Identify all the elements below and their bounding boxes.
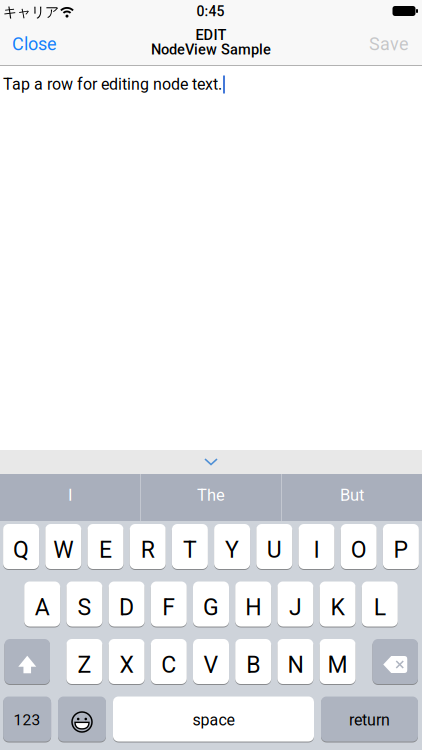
button[interactable]: Close bbox=[0, 25, 69, 63]
staticText: Tap a row for editing node text. bbox=[3, 75, 222, 94]
staticText: S bbox=[77, 594, 91, 621]
button[interactable]: But bbox=[282, 474, 422, 521]
button[interactable]: N bbox=[277, 638, 313, 684]
staticText: I bbox=[68, 485, 72, 505]
button[interactable]: X bbox=[109, 638, 145, 684]
staticText: EDIT bbox=[195, 26, 226, 43]
button[interactable]: Q bbox=[3, 523, 39, 569]
staticText: Close bbox=[12, 33, 57, 55]
staticText: V bbox=[203, 651, 218, 678]
button[interactable]: Shift bbox=[4, 638, 50, 684]
staticText: L bbox=[374, 594, 386, 621]
staticText: But bbox=[340, 485, 364, 505]
staticText: The bbox=[197, 485, 225, 505]
staticText: Save bbox=[369, 33, 409, 55]
staticText: return bbox=[349, 711, 390, 729]
staticText: 123 bbox=[14, 711, 41, 729]
button[interactable]: T bbox=[172, 523, 208, 569]
staticText: P bbox=[393, 536, 408, 563]
button[interactable]: I bbox=[0, 474, 140, 521]
staticText: R bbox=[141, 536, 155, 563]
staticText: キャリア bbox=[3, 3, 59, 21]
button[interactable]: L bbox=[362, 581, 398, 627]
button[interactable]: space bbox=[113, 696, 314, 742]
button[interactable]: D bbox=[109, 581, 145, 627]
staticText: Z bbox=[77, 651, 91, 678]
button[interactable]: B bbox=[235, 638, 271, 684]
button[interactable]: return bbox=[321, 696, 418, 742]
button[interactable]: J bbox=[277, 581, 313, 627]
button[interactable]: F bbox=[151, 581, 187, 627]
staticText: C bbox=[161, 651, 176, 678]
button[interactable]: K bbox=[320, 581, 356, 627]
staticText: H bbox=[245, 594, 261, 621]
staticText: X bbox=[120, 651, 134, 678]
button[interactable]: 123 bbox=[3, 696, 51, 742]
button[interactable]: The bbox=[141, 474, 281, 521]
staticText: O bbox=[351, 536, 367, 563]
button[interactable]: Z bbox=[66, 638, 102, 684]
staticText: D bbox=[119, 594, 134, 621]
button[interactable]: M bbox=[320, 638, 356, 684]
button[interactable]: H bbox=[235, 581, 271, 627]
button[interactable]: Delete bbox=[372, 638, 418, 684]
staticText: K bbox=[331, 594, 345, 621]
button[interactable]: E bbox=[87, 523, 123, 569]
staticText: T bbox=[183, 536, 197, 563]
button[interactable]: W bbox=[45, 523, 81, 569]
button[interactable]: S bbox=[66, 581, 102, 627]
staticText: N bbox=[287, 651, 303, 678]
staticText: U bbox=[267, 536, 282, 563]
button[interactable]: Emoji bbox=[58, 696, 106, 742]
button[interactable]: Y bbox=[214, 523, 250, 569]
button[interactable]: A bbox=[24, 581, 60, 627]
staticText: E bbox=[99, 536, 112, 563]
staticText: W bbox=[53, 536, 73, 563]
button[interactable]: I bbox=[298, 523, 334, 569]
staticText: J bbox=[289, 594, 302, 621]
staticText: space bbox=[192, 711, 234, 729]
button[interactable]: U bbox=[256, 523, 292, 569]
staticText: F bbox=[162, 594, 175, 621]
staticText: Y bbox=[225, 536, 239, 563]
staticText: NodeView Sample bbox=[151, 41, 271, 58]
staticText: A bbox=[35, 594, 50, 621]
button[interactable]: G bbox=[193, 581, 229, 627]
staticText: I bbox=[313, 536, 319, 563]
button[interactable]: C bbox=[151, 638, 187, 684]
staticText: B bbox=[246, 651, 260, 678]
button[interactable]: Save bbox=[356, 25, 422, 63]
button[interactable]: O bbox=[341, 523, 377, 569]
button[interactable]: Dismiss keyboard bbox=[0, 450, 422, 474]
button[interactable]: V bbox=[193, 638, 229, 684]
staticText: 0:45 bbox=[196, 3, 224, 20]
button[interactable]: P bbox=[383, 523, 419, 569]
staticText: Q bbox=[13, 536, 29, 563]
staticText: M bbox=[328, 651, 348, 678]
staticText: G bbox=[203, 594, 219, 621]
button[interactable]: R bbox=[130, 523, 166, 569]
